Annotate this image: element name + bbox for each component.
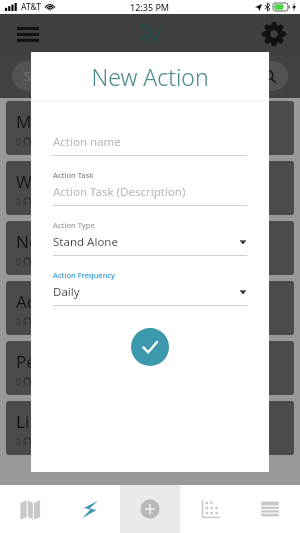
staticText: 0 [16, 436, 21, 447]
staticText: 0 [16, 256, 21, 267]
staticText: Daily [53, 284, 239, 300]
button[interactable]: Menu [14, 20, 42, 48]
staticText: Action name [53, 134, 247, 150]
button[interactable]: Add [120, 485, 180, 533]
button[interactable]: S [12, 61, 288, 91]
button[interactable]: Ne [6, 221, 294, 275]
staticText: Action Type [53, 220, 95, 230]
staticText: Action Frequency [53, 270, 116, 280]
staticText: AT&T [21, 1, 42, 13]
button[interactable]: Stats [180, 485, 240, 533]
button[interactable]: Action Task [53, 170, 247, 206]
staticText: Action Task (Description) [53, 184, 247, 200]
button[interactable]: Li... [6, 401, 294, 455]
staticText: 0 [16, 316, 21, 327]
button[interactable]: Map [0, 485, 60, 533]
button[interactable]: Pe [6, 341, 294, 395]
staticText: Action Task [53, 170, 94, 180]
staticText: Li... [16, 410, 43, 433]
staticText: 12:35 PM [130, 1, 170, 13]
staticText: Stand Alone [53, 234, 239, 250]
button[interactable]: Ac [6, 281, 294, 335]
staticText: Me [16, 110, 42, 133]
button[interactable]: Settings [260, 20, 288, 48]
button[interactable]: Wo [6, 161, 294, 215]
button[interactable]: Action Type [53, 220, 247, 256]
staticText: Wo [16, 170, 42, 193]
staticText: Ac [16, 290, 36, 313]
button[interactable]: Me [6, 101, 294, 155]
button[interactable]: Confirm [131, 328, 169, 366]
staticText: Ne [16, 230, 39, 253]
staticText: 0 [16, 196, 21, 207]
staticText: New Action [91, 61, 209, 92]
staticText: Pe [16, 350, 36, 373]
button[interactable]: List [240, 485, 300, 533]
button[interactable]: Action Frequency [53, 270, 247, 306]
staticText: S [24, 67, 32, 85]
button[interactable]: Actions [60, 485, 120, 533]
staticText: 0 [16, 376, 21, 387]
staticText: 0 [16, 136, 21, 147]
button[interactable]: Action name [53, 134, 247, 156]
